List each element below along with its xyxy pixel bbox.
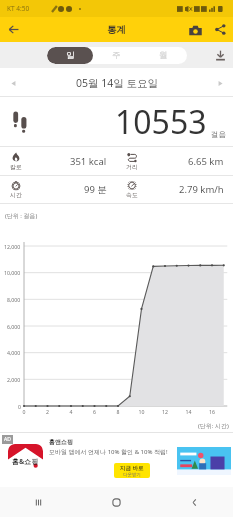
button[interactable]: AD: [0, 432, 233, 487]
staticText: 주: [112, 50, 121, 61]
button[interactable]: 시간: [10, 176, 107, 203]
button[interactable]: 일: [47, 47, 93, 64]
staticText: 다운받기: [123, 472, 141, 478]
staticText: 지금 바로: [120, 464, 144, 472]
button[interactable]: Download: [207, 42, 233, 68]
button[interactable]: 속도: [126, 176, 224, 203]
staticText: 05월 14일 토요일: [76, 76, 158, 90]
button[interactable]: Back: [0, 17, 26, 42]
staticText: 통계: [107, 24, 126, 36]
staticText: 월: [159, 50, 168, 61]
button[interactable]: 칼로: [10, 147, 107, 175]
staticText: (단위: 시간): [198, 422, 229, 430]
button[interactable]: Share: [207, 17, 233, 42]
button[interactable]: Previous day: [0, 70, 26, 96]
staticText: 속도: [126, 191, 138, 199]
button[interactable]: 지금 바로: [114, 463, 150, 478]
button[interactable]: 월: [140, 47, 187, 64]
staticText: 351 kcal: [70, 155, 107, 168]
staticText: KT 4:50: [7, 4, 30, 13]
staticText: 6.65 km: [188, 155, 224, 168]
staticText: 홈앤쇼핑: [49, 438, 73, 446]
button[interactable]: 주: [93, 47, 140, 64]
staticText: 시간: [10, 191, 22, 199]
staticText: 10553: [115, 100, 207, 144]
button[interactable]: Recent apps: [0, 487, 77, 517]
button[interactable]: Camera: [183, 18, 207, 42]
button[interactable]: Next day: [207, 70, 233, 96]
staticText: 홈&쇼핑: [12, 457, 39, 467]
staticText: 거리: [126, 163, 138, 171]
button[interactable]: Home: [77, 487, 155, 517]
staticText: 2.79 km/h: [179, 183, 224, 196]
staticText: (단위 : 걸음): [5, 212, 38, 220]
staticText: 99 분: [84, 183, 107, 196]
staticText: 걸음: [211, 130, 226, 139]
button[interactable]: Back: [155, 487, 233, 517]
staticText: 일: [66, 50, 75, 61]
staticText: 칼로: [10, 163, 22, 171]
button[interactable]: 거리: [126, 147, 224, 175]
staticText: AD: [4, 436, 11, 443]
staticText: 모바일 앱에서 언제나 10% 할인 & 10% 적립!: [49, 448, 168, 456]
